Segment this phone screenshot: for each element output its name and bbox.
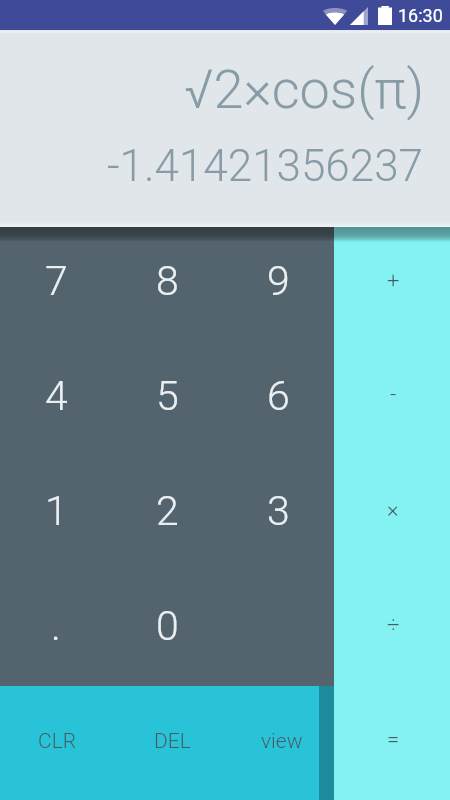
staticText: -1.41421356237	[107, 140, 423, 192]
staticText: 4	[45, 372, 68, 420]
button[interactable]: Multiply	[334, 455, 450, 570]
staticText: .	[51, 602, 61, 650]
button[interactable]: view	[230, 686, 334, 800]
button[interactable]: 7	[0, 227, 112, 341]
button[interactable]: CLR	[0, 686, 115, 800]
button[interactable]: 3	[223, 456, 334, 571]
button[interactable]: 4	[0, 341, 112, 456]
staticText: ×	[387, 497, 399, 523]
button[interactable]: 9	[223, 227, 334, 341]
other: Wi-Fi signal	[323, 7, 347, 25]
button[interactable]: 2	[112, 456, 223, 571]
button[interactable]: 1	[0, 456, 112, 571]
staticText: 3	[267, 487, 290, 535]
button[interactable]: DEL	[115, 686, 230, 800]
button[interactable]: 6	[223, 341, 334, 456]
staticText: 9	[267, 257, 290, 305]
staticText: CLR	[38, 729, 77, 754]
staticText: -	[390, 382, 397, 408]
staticText: 16:30	[398, 5, 443, 26]
button[interactable]: 5	[112, 341, 223, 456]
button[interactable]: Equals	[334, 685, 450, 800]
button[interactable]: Divide	[334, 570, 450, 685]
staticText: =	[387, 727, 400, 753]
staticText: 7	[45, 257, 68, 305]
staticText: 6	[267, 372, 290, 420]
staticText: 5	[156, 372, 179, 420]
staticText: view	[261, 729, 303, 754]
button[interactable]: .	[0, 571, 112, 686]
staticText: +	[387, 268, 400, 294]
staticText: DEL	[154, 729, 191, 754]
button[interactable]: 0	[112, 571, 223, 686]
staticText: 0	[156, 602, 179, 650]
staticText: √2×cos(π)	[184, 58, 425, 121]
button[interactable]: Add	[334, 227, 450, 341]
staticText: ÷	[387, 612, 400, 638]
staticText: 1	[45, 487, 68, 535]
other: Cellular signal	[350, 7, 368, 25]
button[interactable]: 8	[112, 227, 223, 341]
staticText: 2	[156, 487, 179, 535]
other: Battery	[378, 6, 392, 25]
staticText: 8	[156, 257, 179, 305]
